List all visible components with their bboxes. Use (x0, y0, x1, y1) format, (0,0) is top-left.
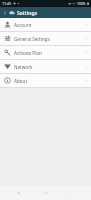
button[interactable]: Navigate up (0, 7, 9, 18)
button[interactable]: Account (0, 18, 91, 31)
staticText: General Settings (14, 36, 81, 42)
button[interactable]: About (0, 74, 91, 87)
staticText: 11:45 (2, 1, 12, 6)
staticText: 100% (77, 1, 86, 6)
staticText: Account (14, 22, 81, 28)
staticText: Settings (17, 9, 38, 16)
staticText: About (14, 78, 81, 84)
button[interactable]: Home (39, 186, 53, 200)
button[interactable]: Recent apps (12, 186, 26, 200)
staticText: Activate Plan (14, 50, 81, 56)
button[interactable]: Network (0, 60, 91, 73)
button[interactable]: General Settings (0, 32, 91, 45)
button[interactable]: Activate Plan (0, 46, 91, 59)
staticText: Network (14, 64, 81, 70)
